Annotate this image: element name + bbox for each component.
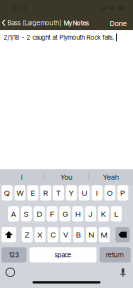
button[interactable]: You <box>44 169 88 185</box>
button[interactable]: D <box>34 206 45 221</box>
button[interactable]: A <box>8 206 19 221</box>
staticText: I <box>96 188 98 198</box>
staticText: P <box>120 188 125 198</box>
staticText: E <box>31 188 35 198</box>
staticText: return <box>106 251 124 259</box>
staticText: 5:32 <box>11 3 26 12</box>
button[interactable]: K <box>98 206 109 221</box>
staticText: V <box>63 230 68 239</box>
staticText: F <box>50 209 54 219</box>
staticText: G <box>62 209 67 219</box>
staticText: S <box>24 209 29 219</box>
staticText: K <box>101 209 106 219</box>
staticText: space <box>54 251 71 259</box>
staticText: You <box>60 173 72 181</box>
button[interactable]: Delete <box>115 227 130 242</box>
staticText: O <box>107 188 113 198</box>
button[interactable]: C <box>47 227 58 242</box>
staticText: Y <box>69 188 74 198</box>
button[interactable]: M <box>99 227 110 242</box>
button[interactable]: F <box>46 206 57 221</box>
staticText: Z <box>25 230 30 239</box>
staticText: W <box>16 188 23 198</box>
button[interactable]: V <box>60 227 71 242</box>
button[interactable]: X <box>35 227 46 242</box>
staticText: A <box>11 209 16 219</box>
staticText: B <box>76 230 81 239</box>
button[interactable]: B <box>73 227 84 242</box>
button[interactable]: I <box>91 185 102 200</box>
staticText: Done <box>110 19 127 28</box>
button[interactable]: Dictation <box>119 268 126 277</box>
staticText: My Notes <box>64 19 89 27</box>
button[interactable]: W <box>14 185 25 200</box>
button[interactable]: J <box>85 206 96 221</box>
staticText: Q <box>4 188 10 198</box>
button[interactable]: N <box>86 227 97 242</box>
staticText: M <box>101 230 108 239</box>
button[interactable]: return <box>100 247 131 262</box>
button[interactable]: Q <box>2 185 13 200</box>
staticText: 2/1/18 - 2 caught at Plymouth Rock falls… <box>3 33 114 41</box>
staticText: 123 <box>9 251 19 259</box>
staticText: U <box>82 188 87 198</box>
button[interactable]: Done <box>107 14 130 32</box>
button[interactable]: space <box>29 247 96 262</box>
button[interactable]: E <box>27 185 38 200</box>
staticText: D <box>37 209 42 219</box>
button[interactable]: Z <box>22 227 33 242</box>
staticText: I <box>21 173 23 181</box>
button[interactable]: I <box>0 169 44 185</box>
button[interactable]: U <box>79 185 90 200</box>
button[interactable]: Shift <box>1 227 16 242</box>
staticText: T <box>56 188 61 198</box>
button[interactable]: R <box>40 185 51 200</box>
staticText: R <box>43 188 48 198</box>
button[interactable]: Y <box>66 185 77 200</box>
staticText: Yeah <box>103 173 119 181</box>
button[interactable]: 123 <box>1 247 26 262</box>
button[interactable]: S <box>21 206 32 221</box>
button[interactable]: L <box>111 206 122 221</box>
staticText: H <box>75 209 80 219</box>
button[interactable]: G <box>59 206 70 221</box>
staticText: N <box>88 230 94 239</box>
button[interactable]: O <box>104 185 115 200</box>
button[interactable]: T <box>53 185 64 200</box>
staticText: X <box>38 230 43 239</box>
button[interactable]: Yeah <box>89 169 133 185</box>
button[interactable]: Bass (Largemouth) <box>0 14 63 31</box>
button[interactable]: Emoji keyboard <box>6 268 15 277</box>
button[interactable]: H <box>72 206 83 221</box>
staticText: J <box>89 209 93 219</box>
button[interactable]: P <box>117 185 128 200</box>
staticText: C <box>50 230 55 239</box>
staticText: L <box>114 209 118 219</box>
staticText: Bass (Largemouth) <box>7 19 61 27</box>
